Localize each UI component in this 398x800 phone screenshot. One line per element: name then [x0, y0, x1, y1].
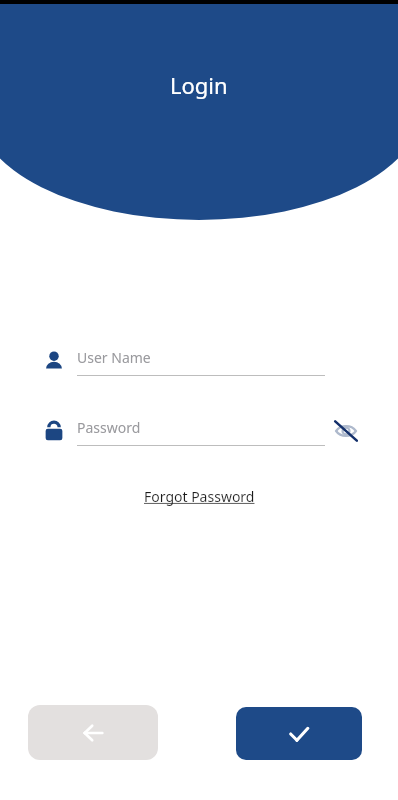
button[interactable]: Forgot Password [138, 484, 261, 509]
button[interactable]: Show password [331, 416, 361, 446]
button[interactable]: User Name [20, 348, 378, 390]
staticText: User Name [77, 348, 151, 367]
button[interactable]: Confirm [236, 707, 362, 760]
staticText: Login [170, 70, 228, 100]
button[interactable]: Back [28, 705, 158, 760]
staticText: Password [77, 418, 141, 437]
staticText: Forgot Password [144, 487, 255, 506]
